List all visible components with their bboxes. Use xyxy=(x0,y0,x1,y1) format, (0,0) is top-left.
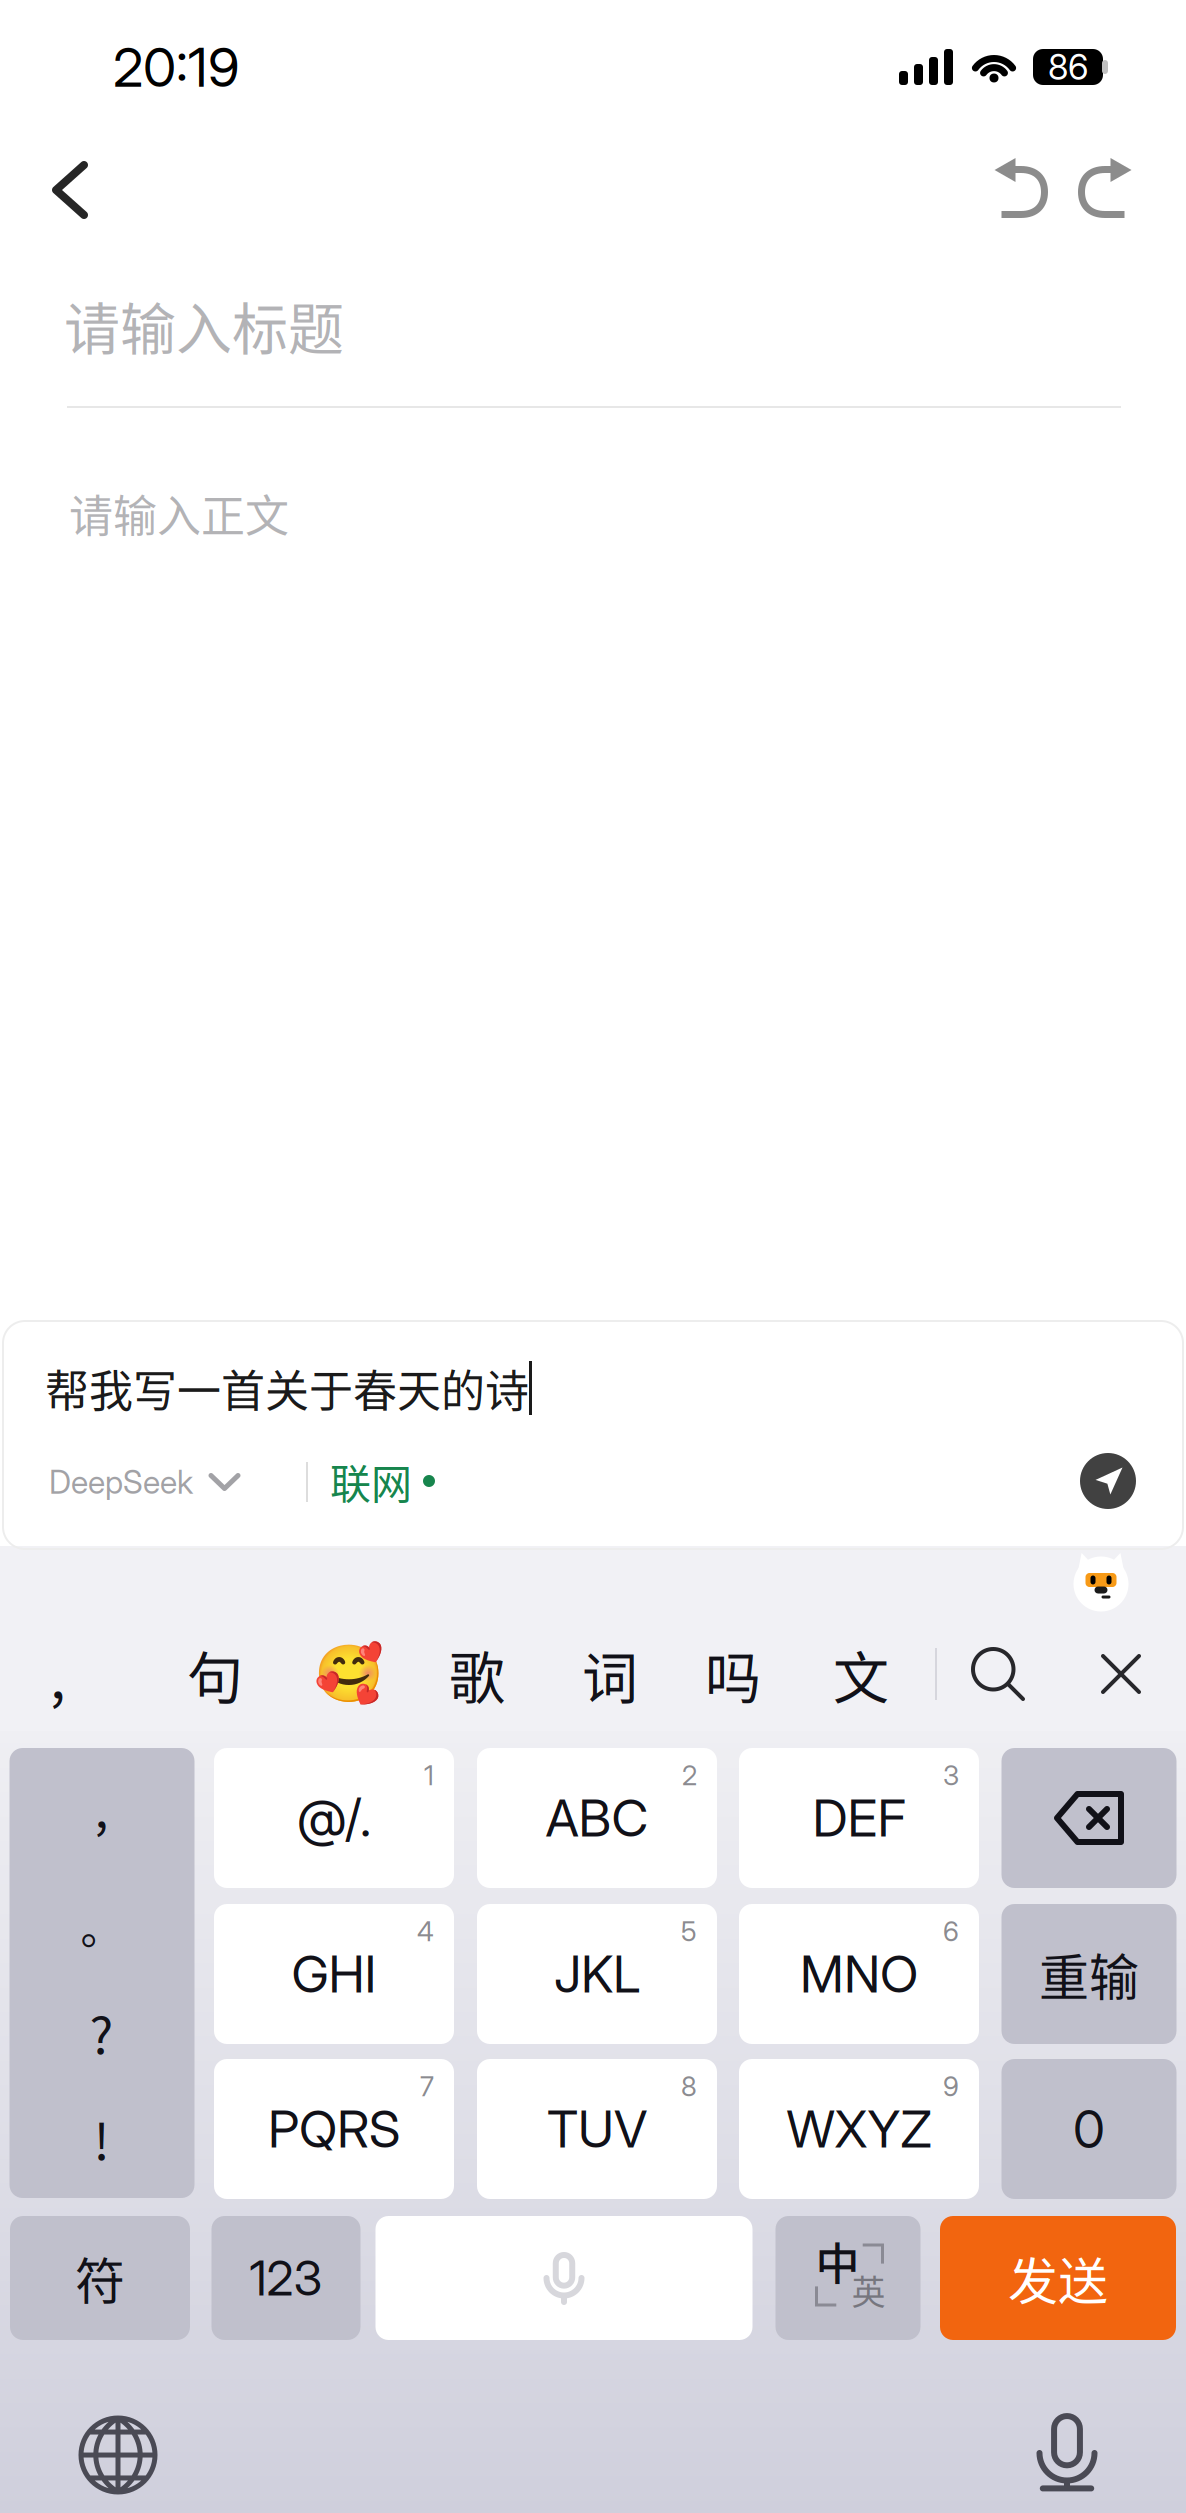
staticText: TUV xyxy=(547,2098,647,2160)
staticText: ! xyxy=(93,2102,109,2174)
staticText: 吗 xyxy=(705,1633,761,1715)
staticText: 9 xyxy=(943,2070,959,2103)
staticText: DEF xyxy=(812,1787,905,1849)
button[interactable]: 9 xyxy=(739,2059,979,2199)
button[interactable]: Search xyxy=(951,1619,1045,1729)
button[interactable]: Voice input xyxy=(375,2216,752,2340)
button[interactable]: Dictate xyxy=(997,2393,1137,2513)
staticText: 20:19 xyxy=(113,34,240,100)
button[interactable]: 词 xyxy=(564,1619,656,1729)
staticText: @/. xyxy=(297,1787,371,1849)
button[interactable]: 歌 xyxy=(431,1619,523,1729)
staticText: DeepSeek xyxy=(49,1463,193,1501)
staticText: ABC xyxy=(545,1787,648,1849)
button[interactable]: 4 xyxy=(214,1904,454,2044)
staticText: , xyxy=(94,1770,108,1842)
button[interactable]: 7 xyxy=(214,2059,454,2199)
button[interactable]: Redo xyxy=(1059,138,1155,242)
staticText: 1 xyxy=(424,1759,434,1792)
button[interactable]: Undo xyxy=(971,138,1067,242)
staticText: 帮我写一首关于春天的诗 xyxy=(45,1356,529,1420)
staticText: WXYZ xyxy=(786,2098,931,2160)
staticText: 5 xyxy=(681,1915,697,1948)
button[interactable]: Back xyxy=(14,138,126,242)
button[interactable]: 123 xyxy=(211,2216,360,2340)
staticText: JKL xyxy=(554,1943,640,2005)
staticText: 联网 xyxy=(330,1451,412,1511)
button[interactable]: Close xyxy=(1074,1619,1168,1729)
staticText: 歌 xyxy=(449,1633,505,1715)
staticText: ? xyxy=(89,1996,113,2068)
button[interactable]: 🥰 xyxy=(303,1619,395,1729)
staticText: 4 xyxy=(417,1915,434,1948)
staticText: 句 xyxy=(187,1633,243,1715)
button[interactable]: 6 xyxy=(739,1904,979,2044)
staticText: 英 xyxy=(851,2265,885,2315)
staticText: 文 xyxy=(833,1633,889,1715)
staticText: 123 xyxy=(249,2249,322,2307)
staticText: GHI xyxy=(291,1943,376,2005)
button[interactable]: 吗 xyxy=(687,1619,779,1729)
staticText: 86 xyxy=(1048,46,1088,88)
staticText: 8 xyxy=(681,2070,697,2103)
button[interactable]: 5 xyxy=(477,1904,717,2044)
staticText: 7 xyxy=(420,2070,434,2103)
staticText: 请输入正文 xyxy=(69,481,289,545)
staticText: 请输入标题 xyxy=(64,284,344,366)
button[interactable]: 重输 xyxy=(1001,1904,1176,2044)
button[interactable]: 发送 xyxy=(940,2216,1176,2340)
staticText: 2 xyxy=(682,1759,697,1792)
staticText: 3 xyxy=(943,1759,959,1792)
button[interactable]: Switch input language xyxy=(775,2216,920,2340)
staticText: 中 xyxy=(815,2229,859,2293)
button[interactable]: 3 xyxy=(739,1748,979,1888)
staticText: 符 xyxy=(75,2242,125,2314)
staticText: 重输 xyxy=(1039,1938,1139,2010)
staticText: 词 xyxy=(582,1633,638,1715)
staticText: 。 xyxy=(80,1896,122,1956)
button[interactable]: 联网 xyxy=(305,1439,485,1523)
button[interactable]: 2 xyxy=(477,1748,717,1888)
button[interactable]: Next keyboard xyxy=(48,2395,188,2513)
staticText: MNO xyxy=(800,1943,918,2005)
button[interactable]: 1 xyxy=(214,1748,454,1888)
staticText: 0 xyxy=(1073,2097,1105,2160)
button[interactable]: 8 xyxy=(477,2059,717,2199)
button[interactable]: Delete xyxy=(1001,1748,1176,1888)
staticText: 发送 xyxy=(1008,2242,1108,2314)
staticText: 🥰 xyxy=(314,1641,384,1707)
button[interactable]: 文 xyxy=(815,1619,907,1729)
staticText: 6 xyxy=(943,1915,959,1948)
staticText: PQRS xyxy=(268,2098,400,2160)
button[interactable]: 0 xyxy=(1001,2059,1176,2199)
button[interactable]: 句 xyxy=(169,1619,261,1729)
button[interactable]: DeepSeek xyxy=(0,1440,258,1524)
button[interactable]: , xyxy=(12,1619,104,1729)
button[interactable]: Punctuation xyxy=(9,1748,194,2198)
button[interactable]: Send xyxy=(1065,1438,1151,1524)
button[interactable]: 符 xyxy=(10,2216,190,2340)
staticText: , xyxy=(50,1633,66,1715)
